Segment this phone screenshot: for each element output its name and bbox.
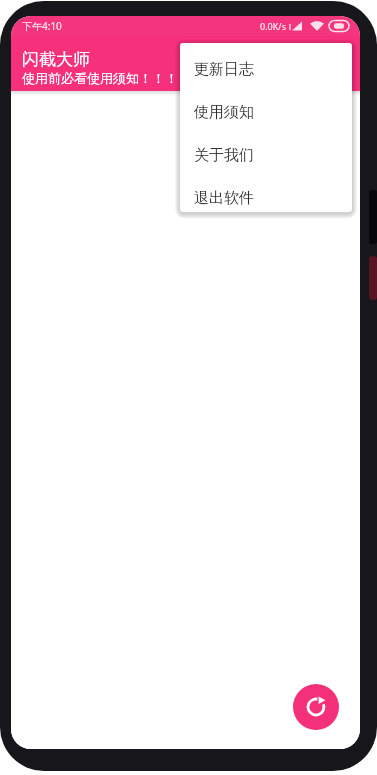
staticText: 下午4:10	[22, 19, 62, 33]
button[interactable]: 更新日志	[180, 48, 352, 91]
staticText: 更新日志	[194, 60, 254, 79]
staticText: 使用前必看使用须知！！！	[22, 70, 178, 86]
button[interactable]	[293, 684, 339, 730]
staticText: 闪截大师	[22, 49, 90, 70]
button[interactable]: 使用须知	[180, 91, 352, 134]
button[interactable]: 关于我们	[180, 134, 352, 177]
button[interactable]: 退出软件	[180, 177, 352, 212]
staticText: 关于我们	[194, 146, 254, 165]
staticText: 0.0K/s	[260, 20, 286, 32]
staticText: 使用须知	[194, 103, 254, 122]
staticText: 退出软件	[194, 189, 254, 208]
